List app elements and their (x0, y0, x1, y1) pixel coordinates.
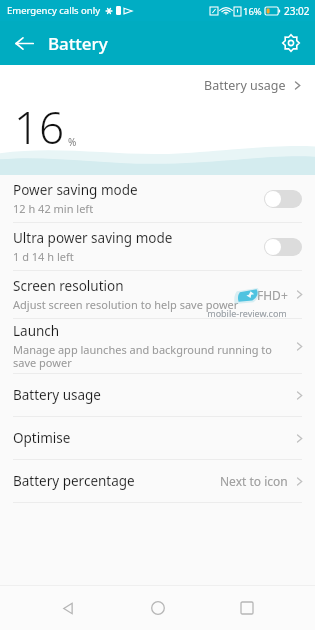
button[interactable]: Toggle (264, 190, 302, 208)
staticText: Battery percentage (13, 472, 135, 490)
button[interactable]: Back (46, 586, 90, 630)
staticText: 12 h 42 min left (13, 201, 94, 216)
staticText: Battery usage (204, 77, 286, 94)
staticText: 23:02 (284, 4, 310, 18)
staticText: Manage app launches and background runni… (13, 342, 294, 370)
button[interactable]: Ultra power saving mode (0, 223, 315, 270)
button[interactable]: Toggle (264, 238, 302, 256)
staticText: Next to icon (220, 473, 288, 489)
staticText: Battery (48, 32, 108, 55)
button[interactable]: Power saving mode (0, 175, 315, 222)
staticText: mobile-review.com (207, 307, 287, 319)
staticText: 16% (243, 5, 262, 18)
staticText: Ultra power saving mode (13, 229, 173, 247)
staticText: Approx. 11 h 48 min left (14, 158, 149, 174)
staticText: 16 (14, 97, 65, 157)
button[interactable]: Battery usage (0, 374, 315, 416)
staticText: Launch (13, 322, 60, 340)
staticText: % (68, 135, 77, 149)
button[interactable]: Battery percentage (0, 460, 315, 502)
staticText: Screen resolution (13, 277, 124, 295)
staticText: Adjust screen resolution to help save po… (13, 297, 239, 312)
staticText: 1 d 14 h left (13, 249, 74, 264)
button[interactable]: Home (136, 586, 180, 630)
staticText: Power saving mode (13, 181, 138, 199)
button[interactable]: Screen resolution (0, 271, 315, 318)
button[interactable]: Back (6, 25, 42, 61)
staticText: Optimise (13, 429, 71, 447)
staticText: Battery usage (13, 386, 101, 404)
button[interactable]: Recents (225, 586, 269, 630)
staticText: FHD+ (257, 287, 288, 303)
staticText: Emergency calls only (7, 4, 101, 17)
button[interactable]: Battery usage (200, 73, 307, 98)
button[interactable]: Settings (273, 25, 309, 61)
button[interactable]: Optimise (0, 417, 315, 459)
button[interactable]: Launch (0, 319, 315, 373)
